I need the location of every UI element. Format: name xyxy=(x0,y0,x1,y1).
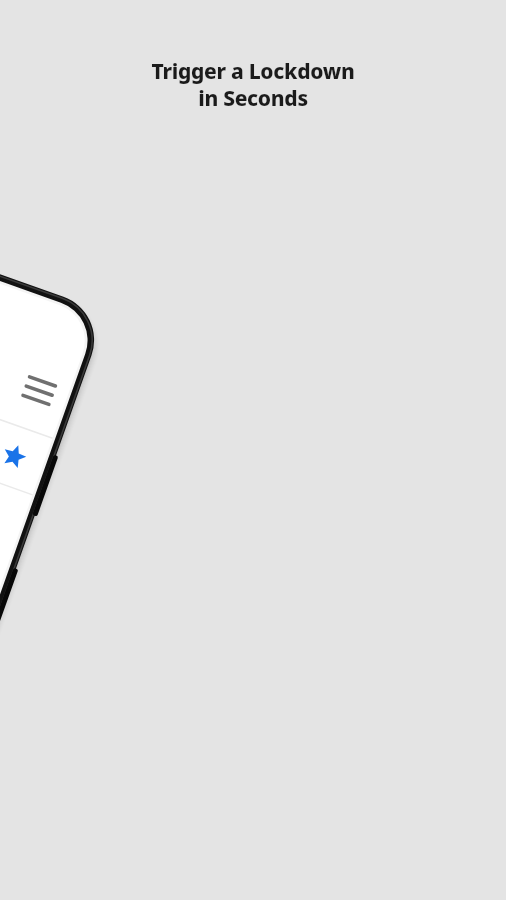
button[interactable]: Trigger a Lockdown in Seconds app previe… xyxy=(0,0,506,900)
